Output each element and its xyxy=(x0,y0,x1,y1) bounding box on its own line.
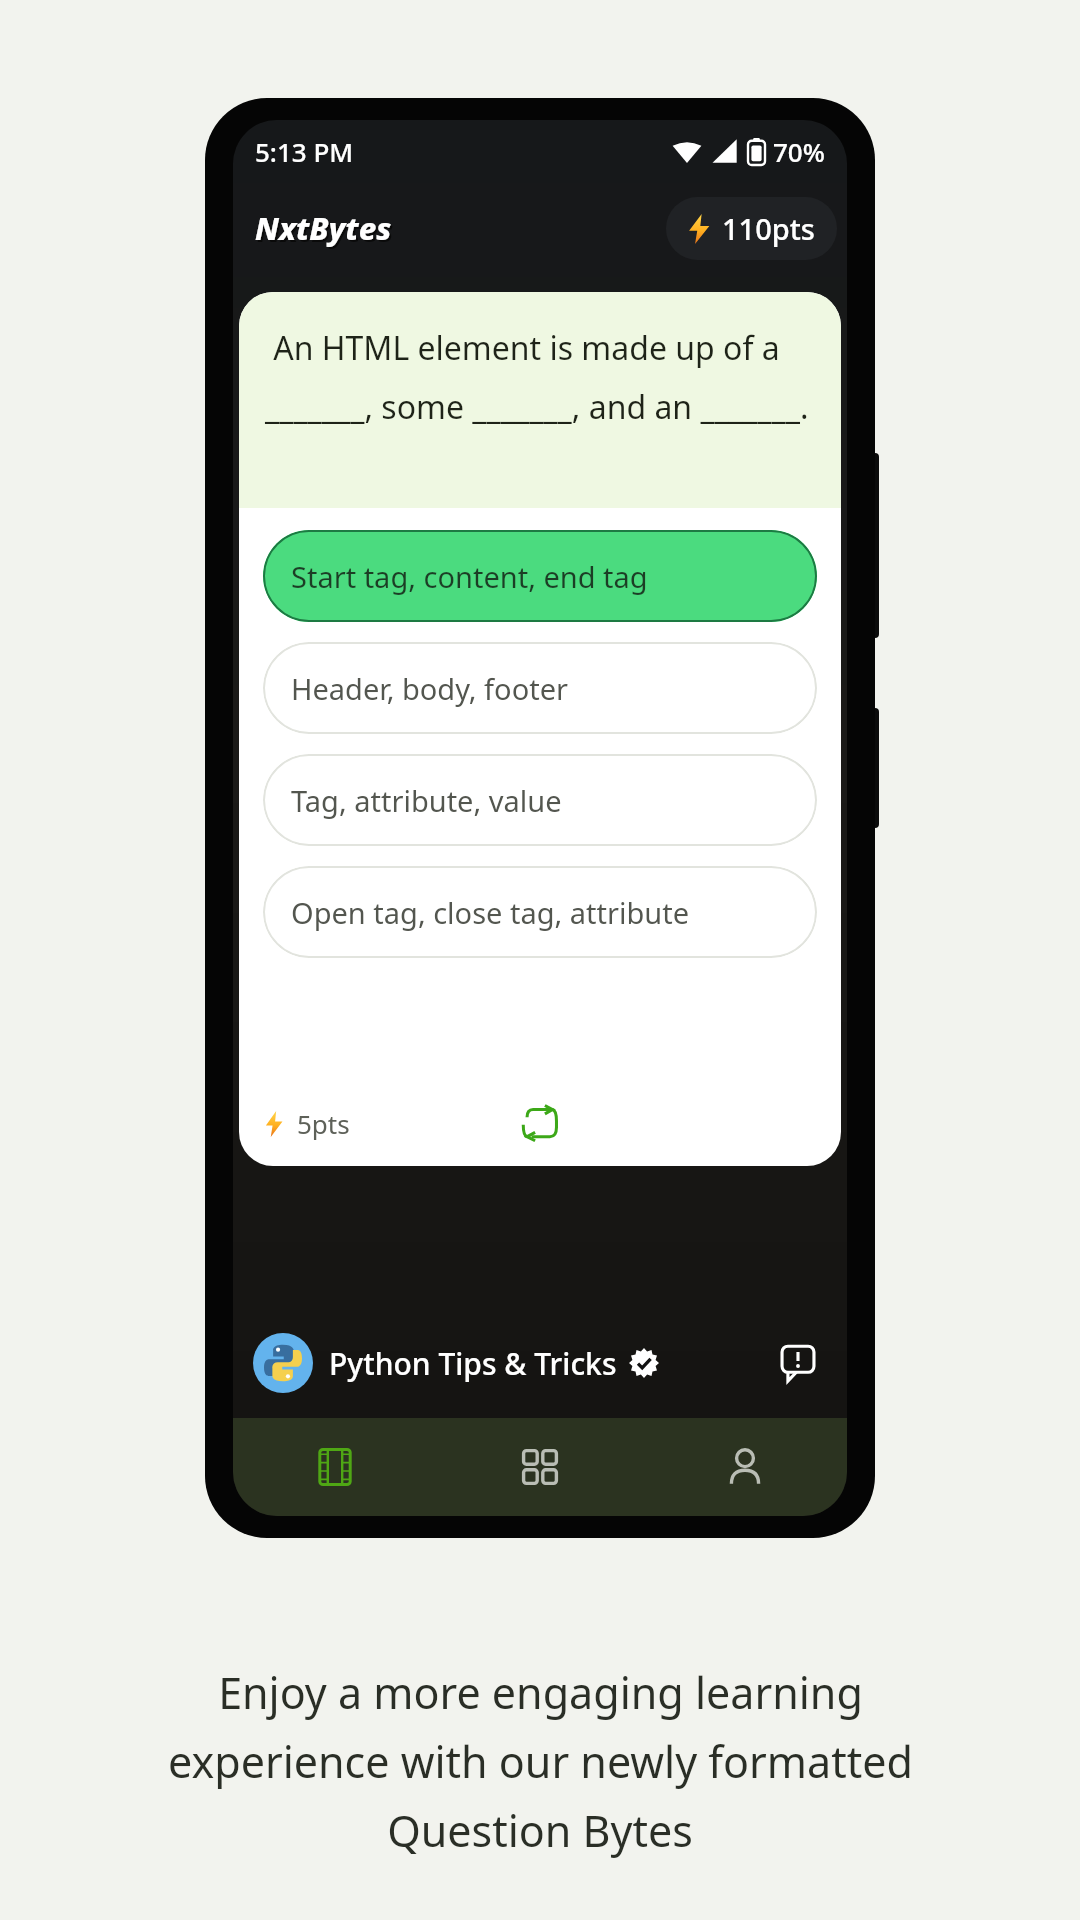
staticText: experience with our newly formatted xyxy=(168,1732,913,1791)
button[interactable]: 5pts xyxy=(265,1106,350,1141)
button[interactable]: Python Tips & Tricks xyxy=(253,1333,769,1393)
staticText: Open tag, close tag, attribute xyxy=(291,893,690,932)
button[interactable]: Tag, attribute, value xyxy=(263,754,817,846)
button[interactable]: Profile xyxy=(642,1418,847,1516)
button[interactable]: 110pts xyxy=(666,197,837,260)
staticText: Question Bytes xyxy=(387,1801,693,1860)
button[interactable]: Start tag, content, end tag xyxy=(263,530,817,622)
staticText: 5:13 PM xyxy=(255,134,354,169)
button[interactable]: Categories xyxy=(437,1418,642,1516)
staticText: 70% xyxy=(773,134,825,169)
staticText: 110pts xyxy=(722,209,815,248)
staticText: NxtBytes xyxy=(255,207,392,249)
staticText: 5pts xyxy=(297,1106,350,1141)
staticText: Header, body, footer xyxy=(291,669,568,708)
button[interactable]: Open tag, close tag, attribute xyxy=(263,866,817,958)
staticText: Python Tips & Tricks xyxy=(329,1343,617,1384)
staticText: An HTML element is made up of a _______,… xyxy=(265,326,815,428)
staticText: Enjoy a more engaging learning xyxy=(218,1663,863,1722)
button[interactable]: Header, body, footer xyxy=(263,642,817,734)
button[interactable]: Feed xyxy=(233,1418,437,1516)
button[interactable]: Replay question xyxy=(512,1095,568,1151)
staticText: NxtBytes xyxy=(257,209,394,251)
button[interactable]: Report xyxy=(769,1334,827,1392)
staticText: Start tag, content, end tag xyxy=(291,557,648,596)
staticText: Tag, attribute, value xyxy=(291,781,562,820)
